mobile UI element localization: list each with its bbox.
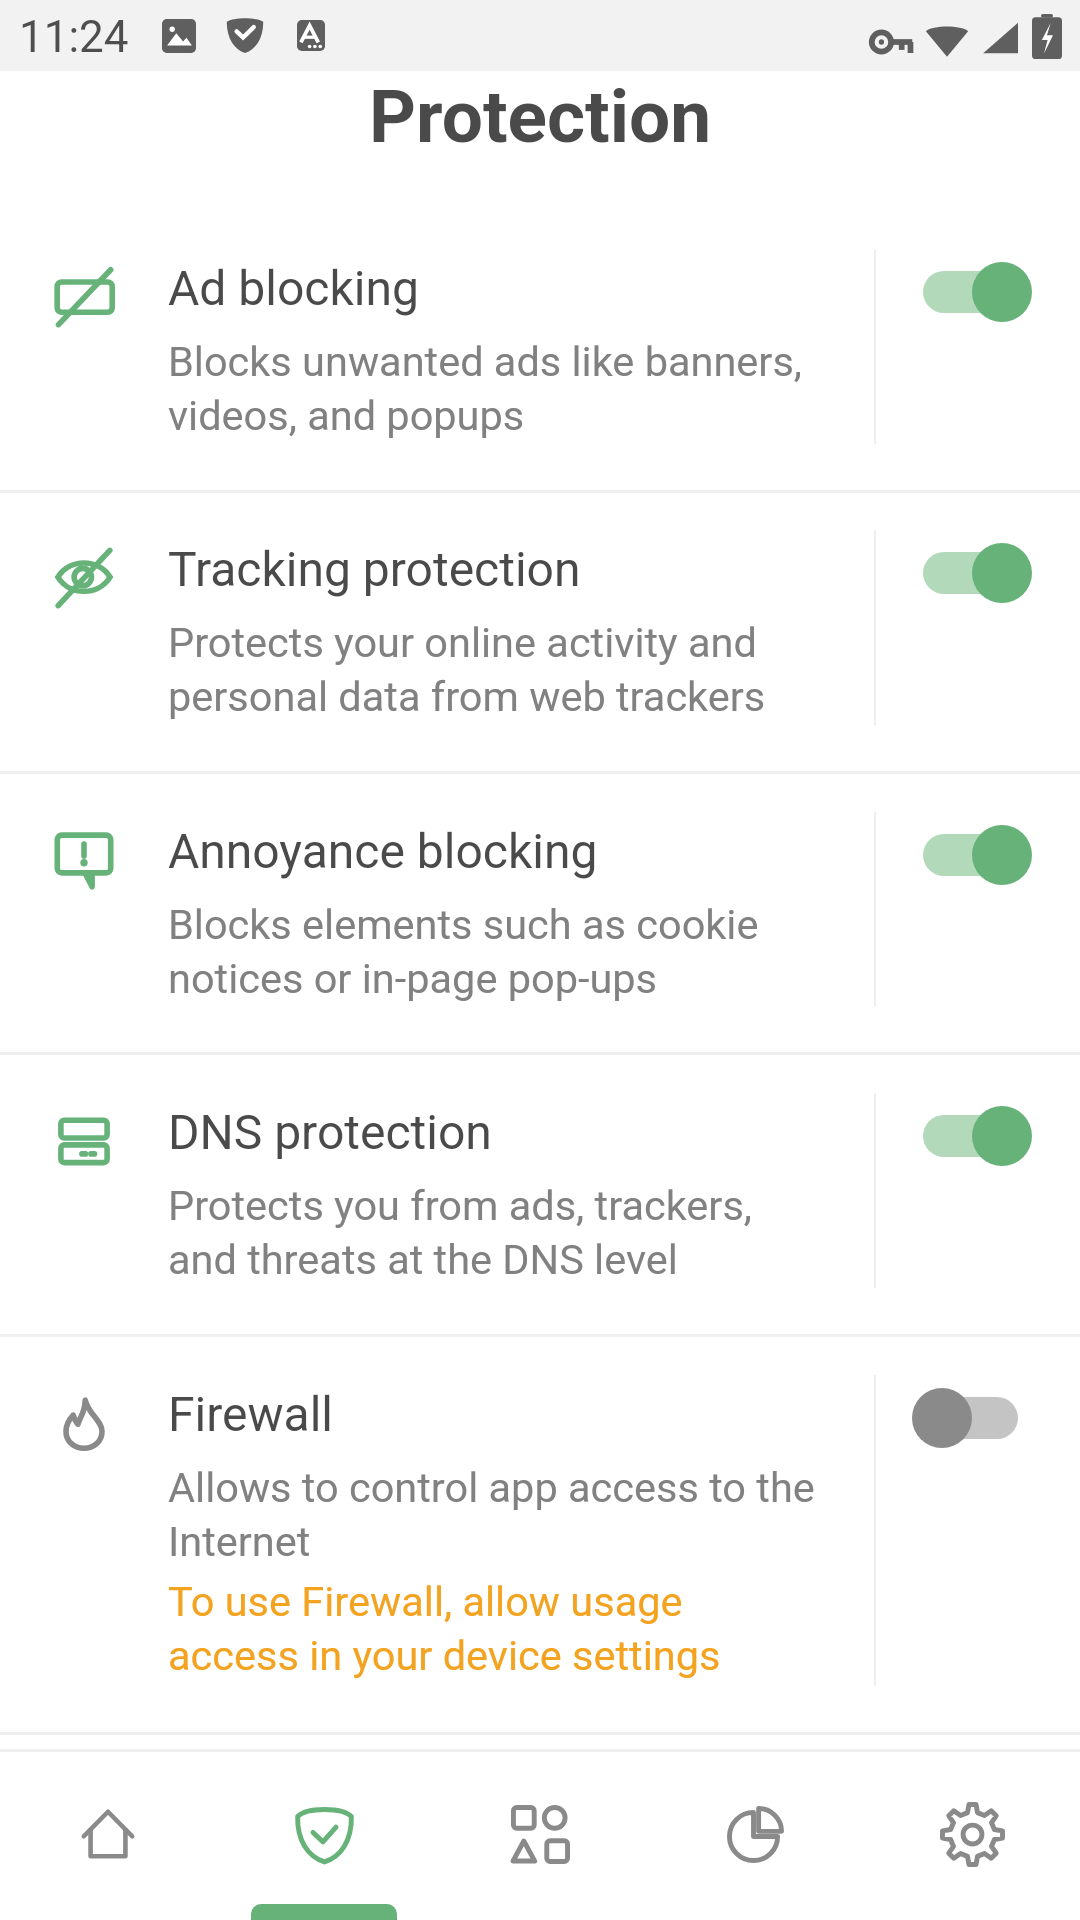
button[interactable]: Annoyance blocking: [0, 772, 1080, 1053]
button[interactable]: Firewall: [0, 1335, 1080, 1732]
button[interactable]: Settings: [864, 1732, 1080, 1920]
button[interactable]: Ad blocking: [0, 209, 1080, 490]
staticText: Ad blocking: [168, 260, 419, 316]
staticText: 11:24: [19, 11, 129, 63]
button[interactable]: Toggle Firewall: [912, 1388, 1032, 1448]
button[interactable]: Toggle Ad blocking: [912, 262, 1032, 322]
button[interactable]: Home: [0, 1732, 216, 1920]
staticText: Protects you from ads, trackers, and thr…: [168, 1181, 752, 1284]
staticText: Blocks unwanted ads like banners, videos…: [168, 337, 803, 440]
button[interactable]: DNS protection: [0, 1053, 1080, 1334]
staticText: Firewall: [168, 1386, 333, 1442]
button[interactable]: Protection: [216, 1732, 432, 1920]
button[interactable]: Toggle DNS protection: [912, 1106, 1032, 1166]
staticText: Tracking protection: [168, 541, 581, 597]
button[interactable]: Statistics: [648, 1732, 864, 1920]
staticText: Protection: [369, 74, 712, 160]
staticText: Annoyance blocking: [168, 823, 598, 879]
staticText: Protects your online activity and person…: [168, 618, 766, 721]
button[interactable]: Tracking protection: [0, 490, 1080, 771]
button[interactable]: Toggle Annoyance blocking: [912, 825, 1032, 885]
staticText: To use Firewall, allow usage access in y…: [168, 1577, 721, 1680]
staticText: Allows to control app access to the Inte…: [168, 1463, 815, 1566]
button[interactable]: Toggle Tracking protection: [912, 543, 1032, 603]
button[interactable]: Apps: [432, 1732, 648, 1920]
staticText: Blocks elements such as cookie notices o…: [168, 900, 759, 1003]
staticText: DNS protection: [168, 1104, 492, 1160]
